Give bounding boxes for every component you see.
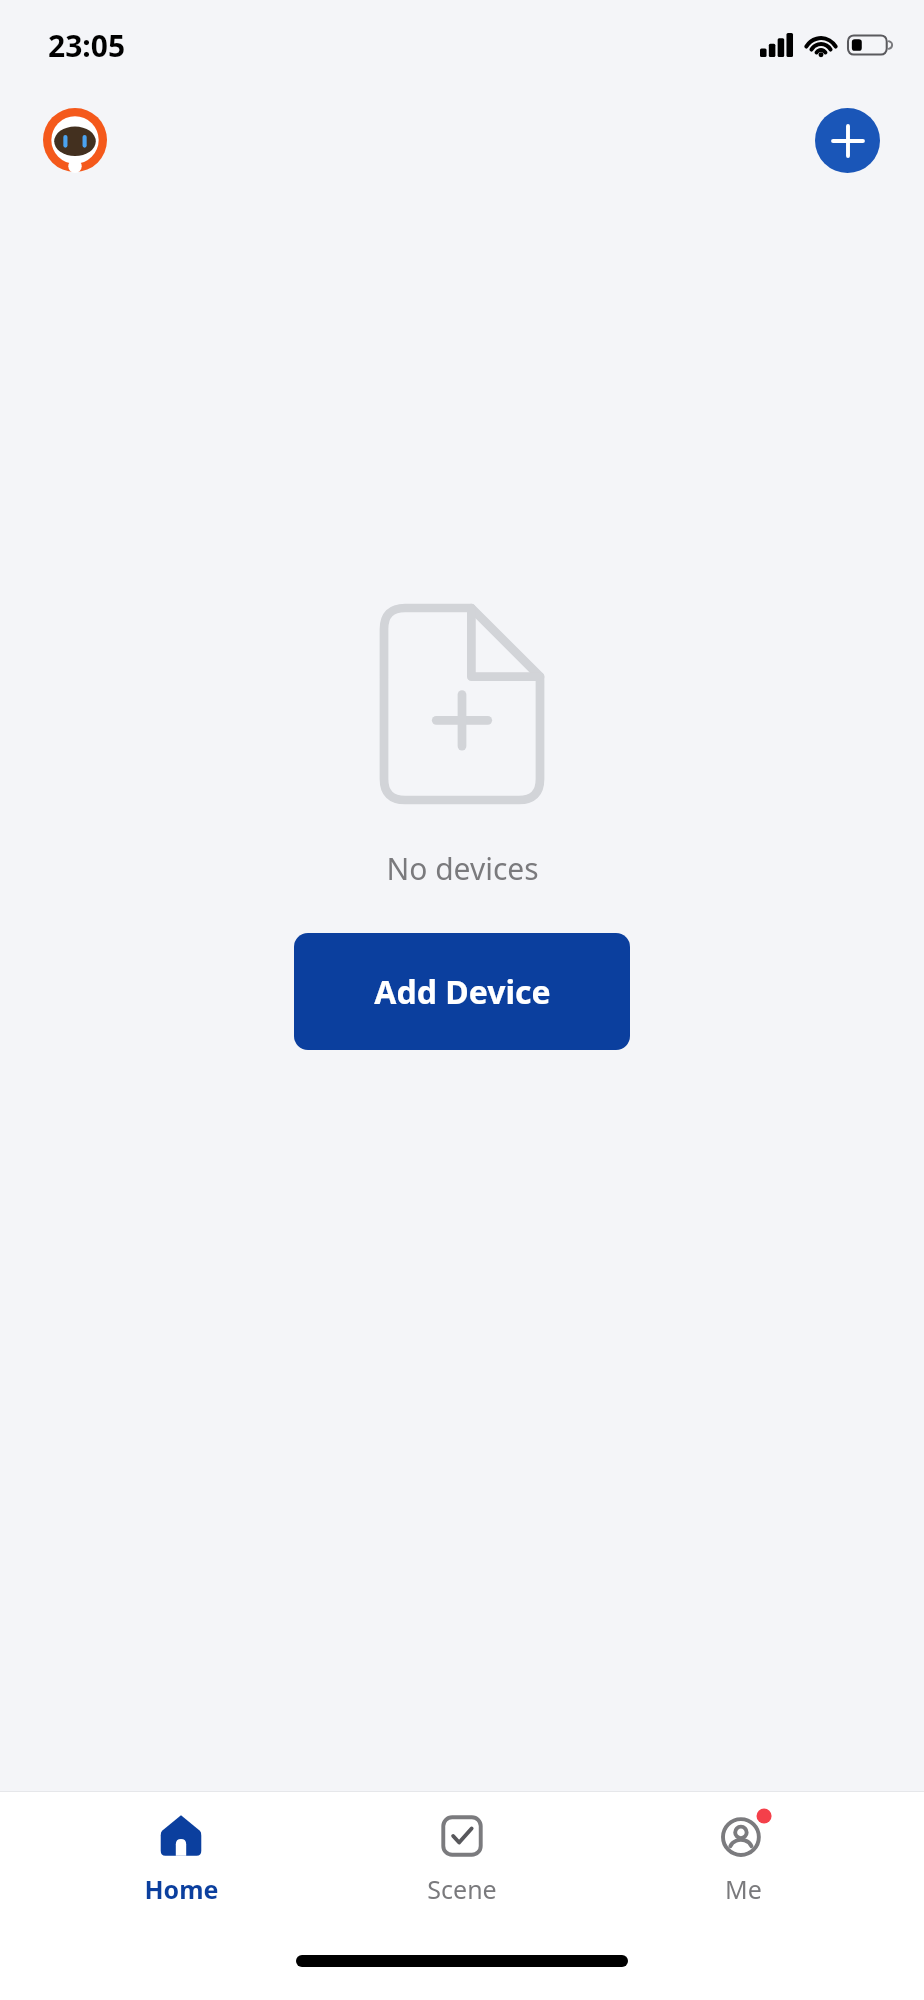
button[interactable]: Home: [81, 1792, 281, 1906]
staticText: Add Device: [374, 970, 551, 1014]
button[interactable]: Add: [815, 108, 880, 173]
staticText: No devices: [386, 848, 539, 889]
button[interactable]: Add Device: [294, 933, 630, 1050]
button[interactable]: Scene: [362, 1792, 562, 1906]
staticText: Scene: [427, 1872, 497, 1906]
staticText: Me: [725, 1872, 762, 1906]
staticText: 23:05: [48, 25, 126, 66]
button[interactable]: Me: [643, 1792, 843, 1906]
button[interactable]: Profile logo: [43, 108, 107, 172]
staticText: Home: [144, 1872, 219, 1906]
